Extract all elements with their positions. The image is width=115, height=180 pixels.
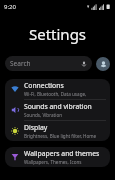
button[interactable]: Sounds and vibration	[5, 100, 110, 120]
staticText: Sounds, Vibration	[24, 112, 63, 118]
staticText: Wallpapers and themes	[24, 149, 100, 158]
other: Voice search	[81, 61, 87, 67]
button[interactable]: Account	[96, 57, 110, 71]
staticText: Wi-Fi, Bluetooth, Data usage, Airplane m…	[24, 91, 105, 97]
button[interactable]: Wallpapers and themes	[5, 147, 110, 167]
staticText: Wallpapers, Themes, Icons	[24, 159, 82, 165]
staticText: Sounds and vibration	[24, 102, 92, 111]
staticText: Connections	[24, 81, 64, 90]
staticText: 9:20	[4, 3, 16, 11]
staticText: Display	[24, 123, 48, 132]
staticText: Brightness, Blue light filter, Home scre…	[24, 133, 105, 139]
staticText: Settings	[0, 24, 115, 44]
button[interactable]: Search	[5, 56, 92, 71]
button[interactable]: Display	[5, 121, 110, 141]
button[interactable]: Connections	[5, 79, 110, 99]
staticText: Search	[10, 59, 31, 68]
